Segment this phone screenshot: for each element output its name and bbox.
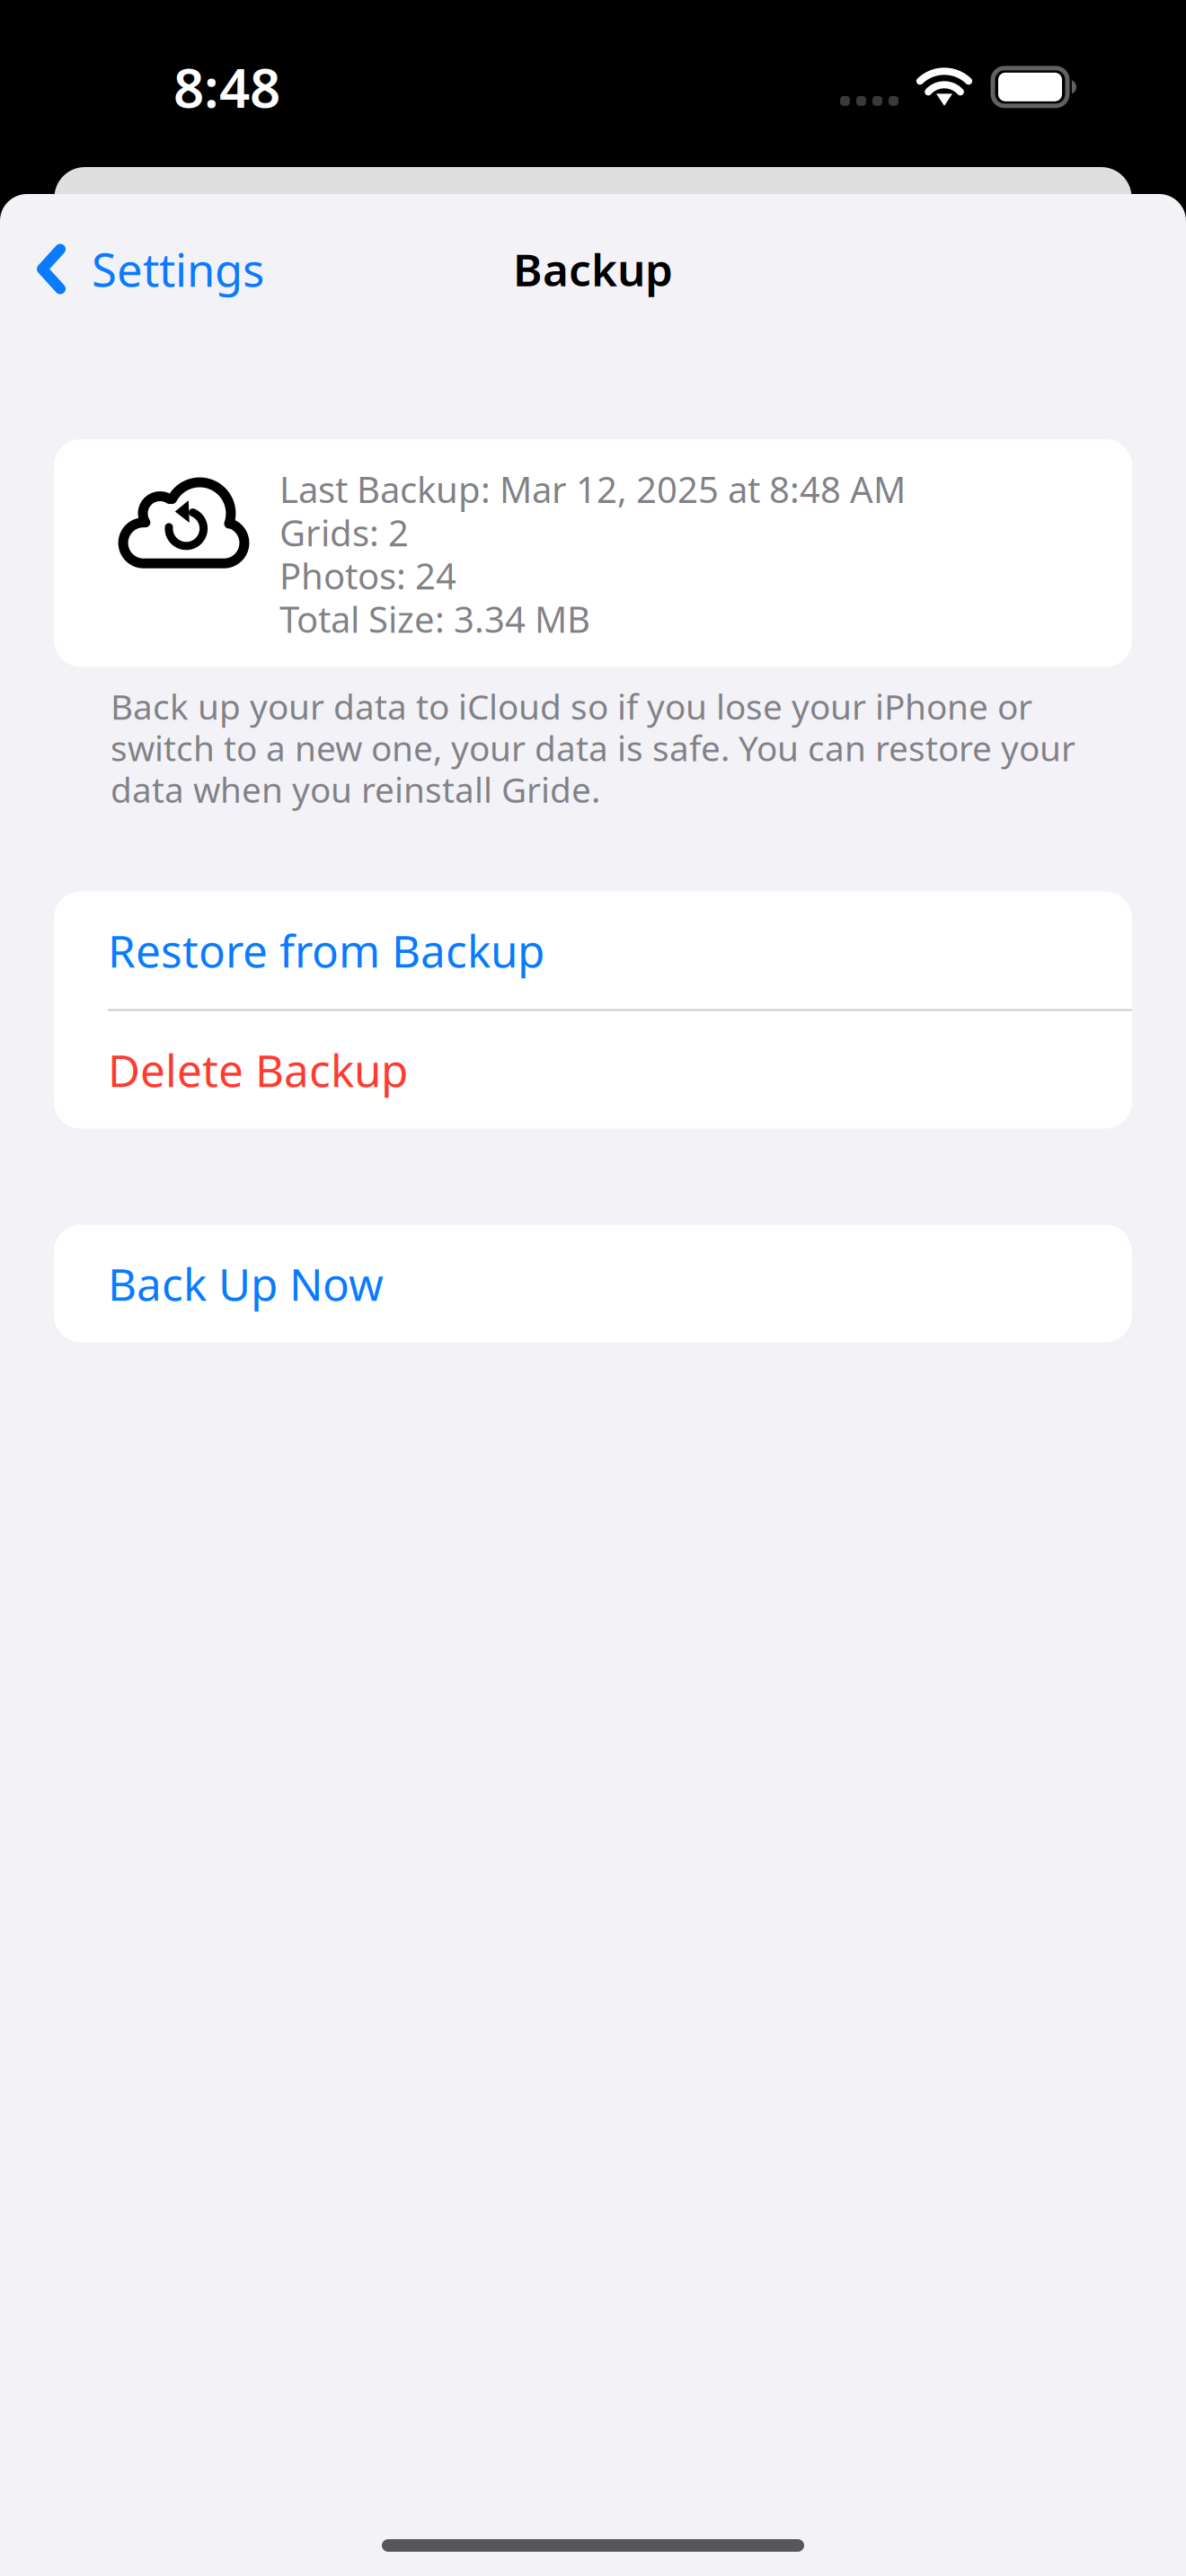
staticText: Settings	[92, 239, 264, 299]
button[interactable]: Back Up Now	[54, 1225, 1132, 1342]
button[interactable]: Delete Backup	[54, 1011, 1132, 1129]
staticText: Restore from Backup	[108, 921, 544, 980]
staticText: Delete Backup	[108, 1040, 408, 1099]
button[interactable]: Settings	[0, 224, 264, 314]
staticText: 8:48	[173, 51, 280, 123]
staticText: Back up your data to iCloud so if you lo…	[111, 683, 1075, 812]
button[interactable]: Restore from Backup	[54, 891, 1132, 1009]
staticText: Backup	[513, 240, 673, 298]
staticText: Last Backup: Mar 12, 2025 at 8:48 AM Gri…	[279, 465, 906, 643]
staticText: Back Up Now	[108, 1254, 384, 1313]
